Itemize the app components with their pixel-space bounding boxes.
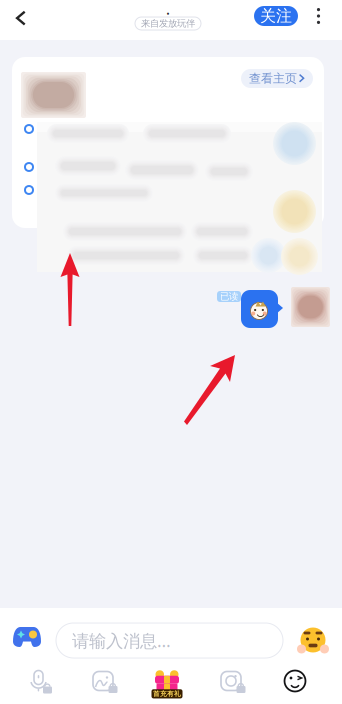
button[interactable]: Photo, locked (71, 660, 135, 702)
button[interactable]: Stickers (263, 660, 327, 702)
button[interactable]: 关注 (254, 6, 298, 26)
button[interactable]: Emoji (299, 626, 327, 654)
staticText: 首充有礼 (153, 690, 181, 698)
button[interactable]: Voice message, locked (7, 660, 71, 702)
staticText: 关注 (260, 6, 292, 26)
staticText: 来自发放玩伴 (141, 18, 195, 29)
button[interactable]: More options (313, 5, 324, 27)
button[interactable]: 查看主页 (241, 69, 313, 88)
staticText: 查看主页 (249, 71, 297, 86)
button[interactable]: Back (11, 7, 31, 29)
staticText: 请输入消息… (72, 629, 171, 652)
button[interactable]: Games (12, 624, 42, 648)
staticText: 已读 (220, 291, 238, 302)
staticText: . (166, 0, 170, 19)
button[interactable]: Camera, locked (199, 660, 263, 702)
button[interactable]: Gift (135, 660, 199, 702)
button[interactable]: 请输入消息… (56, 623, 283, 658)
